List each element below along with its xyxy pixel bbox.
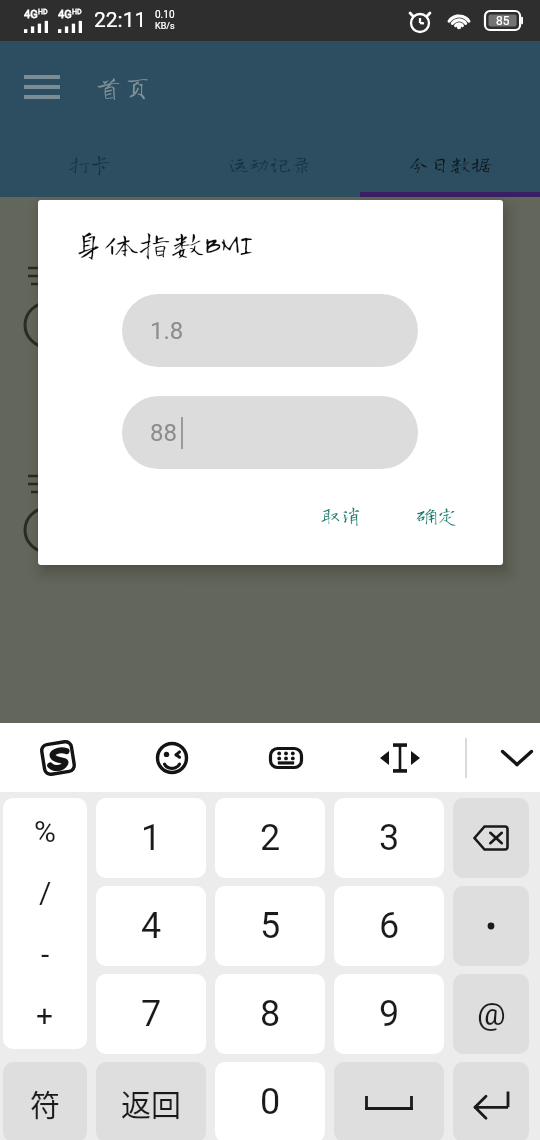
staticText: 88 [150,419,177,447]
button[interactable]: % [3,798,87,1049]
staticText: 取消 [320,505,362,526]
button[interactable]: 符 [3,1062,87,1140]
button[interactable]: @ [453,974,529,1054]
staticText: + [36,998,54,1033]
button[interactable]: 运动记录 [180,132,360,197]
staticText: 首页 [94,72,153,101]
staticText: 3 [379,817,400,859]
button[interactable]: Backspace [453,798,529,878]
staticText: 返回 [121,1081,181,1124]
button[interactable]: 今日数据 [360,132,540,197]
staticText: 身体指数BMI [72,227,253,260]
button[interactable]: Keyboard layout [229,723,343,792]
button[interactable]: Hide keyboard [489,730,540,786]
staticText: 打卡 [69,154,111,175]
button[interactable]: Move cursor [343,723,457,792]
staticText: 1 [141,817,162,859]
button[interactable]: Decimal point [453,886,529,966]
button[interactable]: Emoji [115,723,229,792]
button[interactable]: 3 [334,798,444,878]
button[interactable]: 9 [334,974,444,1054]
staticText: KB/s [155,21,175,32]
staticText: 4G [24,8,38,21]
staticText: 6 [379,905,400,947]
button[interactable]: 1 [96,798,206,878]
button[interactable]: Space [334,1062,444,1140]
button[interactable]: 6 [334,886,444,966]
button[interactable]: Enter [453,1062,529,1140]
button[interactable]: Sogou input [1,723,115,792]
staticText: 0 [260,1081,281,1123]
staticText: @ [477,995,506,1033]
staticText: - [41,937,50,972]
button[interactable]: Menu [14,59,70,115]
staticText: HD [72,8,82,16]
button[interactable]: 0 [215,1062,325,1140]
staticText: 今日数据 [408,154,492,175]
button[interactable]: 7 [96,974,206,1054]
button[interactable]: 2 [215,798,325,878]
staticText: 5 [260,905,281,947]
staticText: 1.8 [150,317,184,345]
staticText: 4 [141,905,162,947]
staticText: HD [38,8,48,16]
staticText: 0.10 [155,9,175,21]
button[interactable]: 取消 [310,497,372,534]
staticText: 7 [141,993,162,1035]
staticText: 符 [30,1081,60,1124]
button[interactable]: 5 [215,886,325,966]
staticText: 9 [379,993,400,1035]
staticText: / [39,875,52,910]
button[interactable]: 确定 [406,497,468,534]
button[interactable]: 88 [122,396,418,469]
button[interactable]: 4 [96,886,206,966]
button[interactable]: 1.8 [122,294,418,367]
staticText: 确定 [416,505,458,526]
button[interactable]: 8 [215,974,325,1054]
staticText: 85 [496,14,510,28]
staticText: 8 [260,993,281,1035]
staticText: 4G [58,8,72,21]
staticText: 2 [260,817,281,859]
button[interactable]: 返回 [96,1062,206,1140]
staticText: 运动记录 [228,154,312,175]
staticText: % [34,814,56,849]
staticText: 22:11 [94,8,147,33]
